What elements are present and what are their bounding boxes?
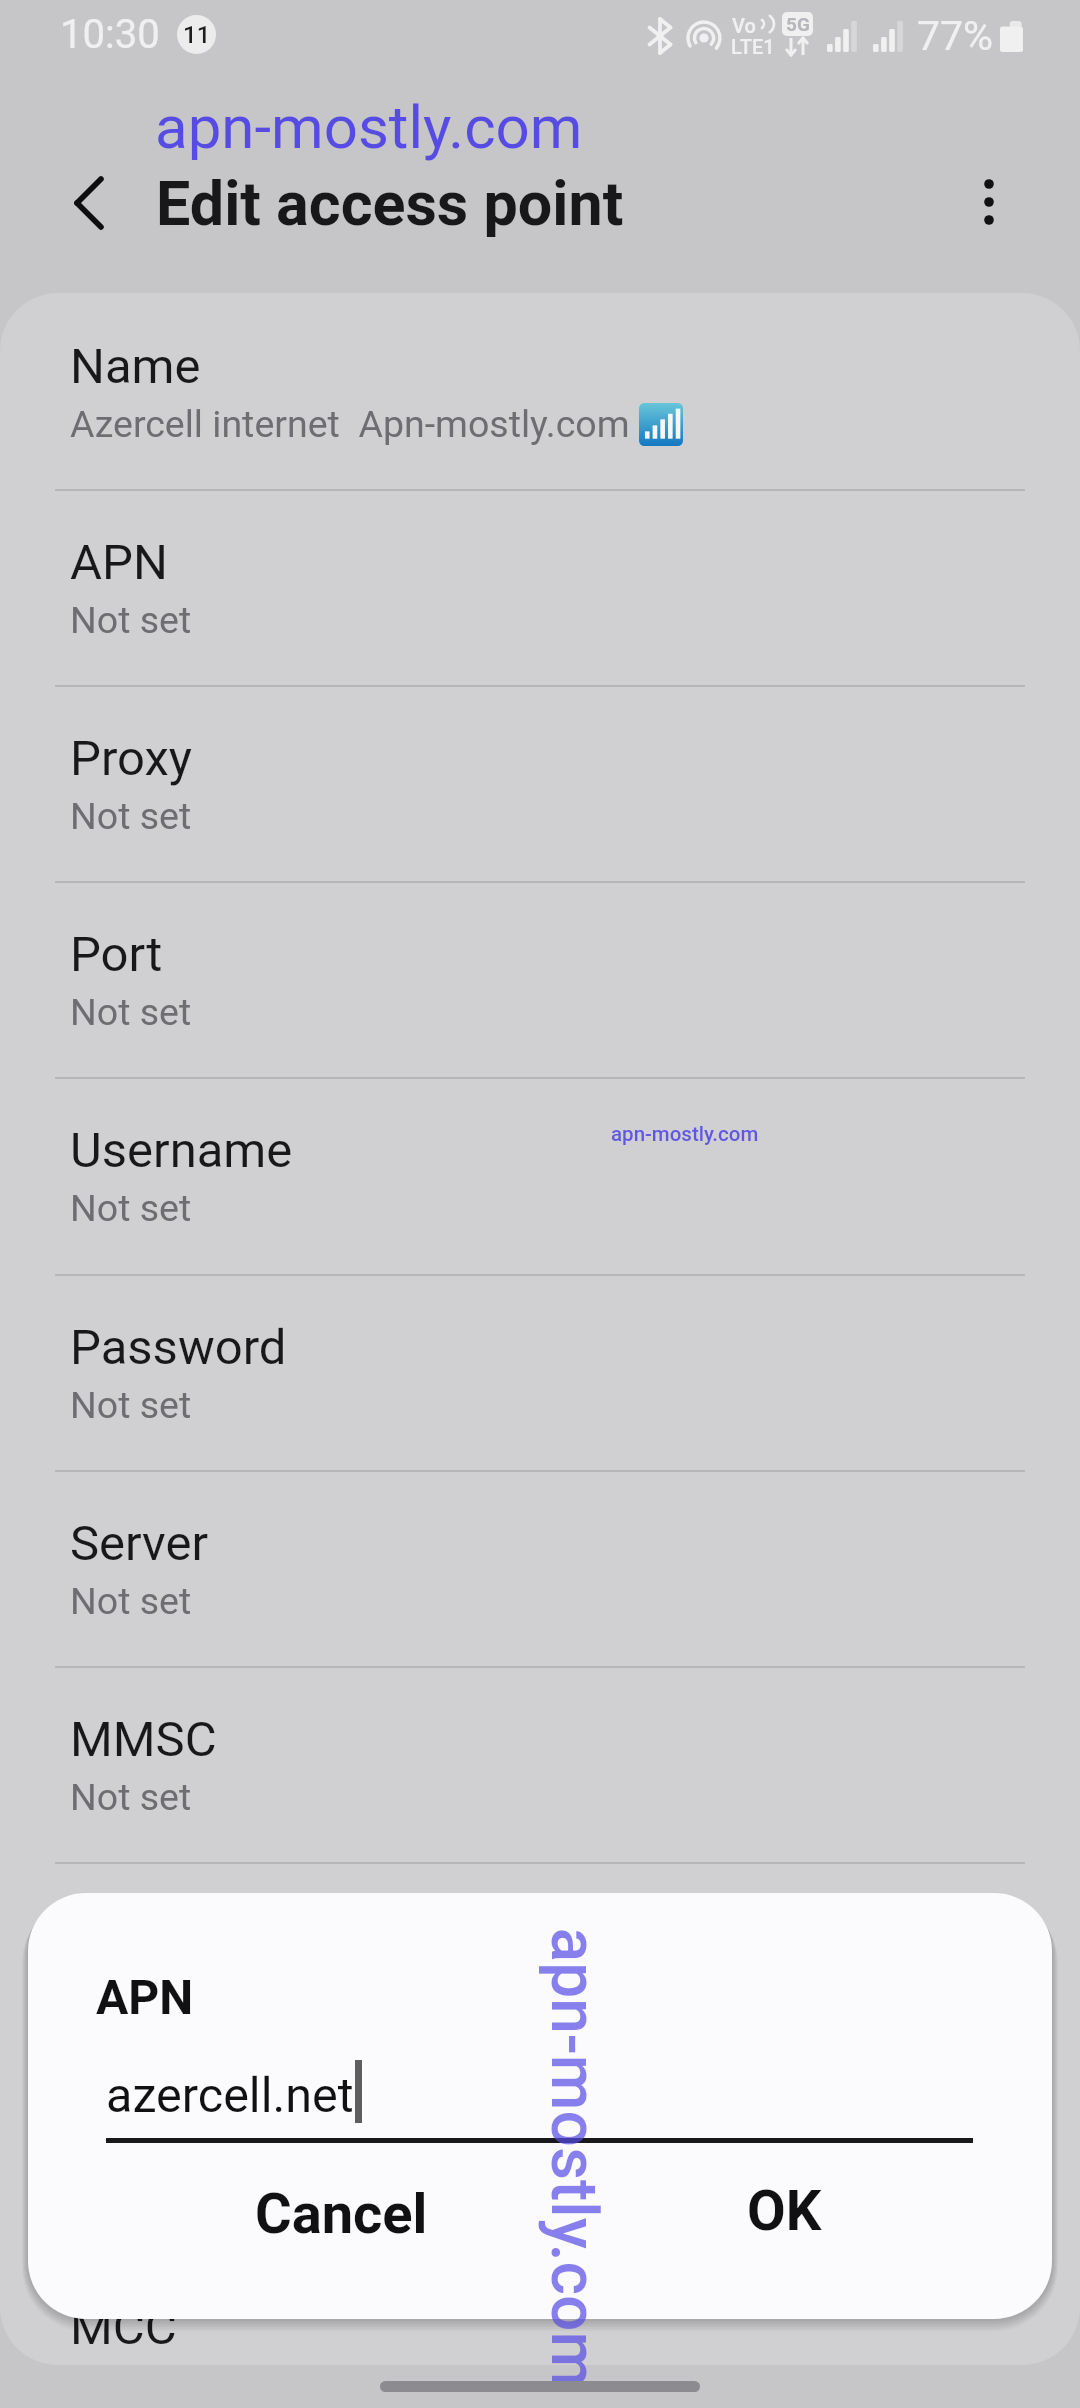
staticText: Not set (70, 1186, 192, 1230)
button[interactable]: Name (0, 293, 1080, 489)
button[interactable]: MCC (0, 2254, 1080, 2365)
staticText: Username (70, 1122, 293, 1179)
staticText: Cancel (255, 2181, 428, 2247)
button[interactable]: Proxy (0, 685, 1080, 881)
staticText: Edit access point (156, 168, 624, 239)
button[interactable]: Port (0, 881, 1080, 1077)
button[interactable]: APN (0, 489, 1080, 685)
staticText: APN (70, 534, 168, 591)
staticText: Vo (732, 14, 756, 37)
staticText: Not set (70, 1383, 192, 1427)
staticText: Not set (70, 1971, 192, 2015)
staticText: MMSC (70, 1711, 217, 1768)
staticText: apn-mostly.com (611, 1122, 759, 1146)
staticText: Azercell internet Apn-mostly.com (70, 402, 639, 446)
staticText: OK (747, 2178, 822, 2244)
staticText: apn-mostly.com (155, 92, 583, 162)
staticText: 5G (786, 13, 810, 35)
staticText: azercell.net (106, 2067, 354, 2124)
staticText: Not set (70, 1579, 192, 1623)
button[interactable]: MMS proxy (0, 1862, 1080, 2058)
staticText: LTE1 (731, 35, 775, 58)
staticText: Password (70, 1319, 287, 1376)
staticText: 10:30 (60, 11, 160, 58)
button[interactable]: Navigate up (36, 150, 142, 256)
staticText: MMS port (70, 2103, 287, 2160)
staticText: apn-mostly.com (535, 1927, 610, 2387)
staticText: Not set (70, 794, 192, 838)
button[interactable]: More options (941, 154, 1037, 250)
button[interactable]: Cancel (183, 2161, 499, 2267)
staticText: Port (70, 926, 163, 983)
button[interactable]: Password (0, 1274, 1080, 1470)
button[interactable]: MMS port (0, 2058, 1080, 2254)
staticText: Not set (70, 990, 192, 1034)
staticText: Proxy (70, 730, 192, 787)
staticText: Not set (70, 598, 192, 642)
staticText: 11 (183, 21, 211, 49)
staticText: Server (70, 1515, 209, 1572)
button[interactable]: Username (0, 1077, 1080, 1273)
staticText: Not set (70, 1775, 192, 1819)
staticText: 77% (917, 12, 994, 60)
staticText: MCC (70, 2299, 177, 2356)
button[interactable]: MMSC (0, 1666, 1080, 1862)
button[interactable]: OK (626, 2158, 942, 2264)
button[interactable]: Server (0, 1470, 1080, 1666)
staticText: Name (70, 338, 201, 395)
staticText: APN (96, 1969, 194, 2025)
